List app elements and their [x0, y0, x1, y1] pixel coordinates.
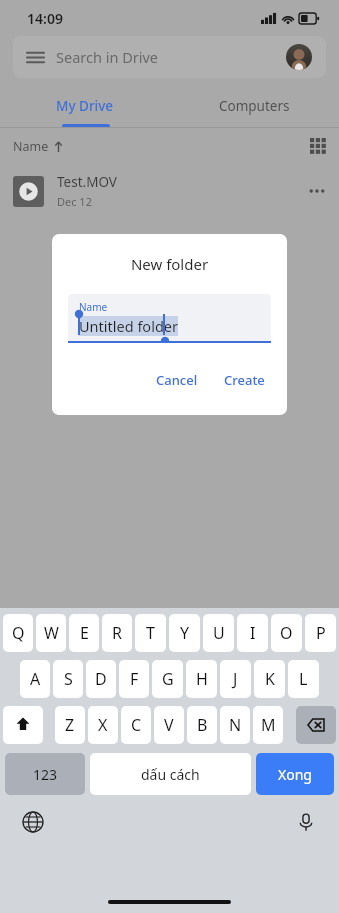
staticText: New folder	[52, 254, 287, 274]
button[interactable]: C	[121, 706, 151, 744]
staticText: T	[146, 622, 155, 644]
button[interactable]: Change keyboard	[22, 811, 44, 833]
button[interactable]: B	[187, 706, 217, 744]
button[interactable]: Grid view	[310, 138, 326, 154]
button[interactable]: More options	[308, 182, 326, 200]
button[interactable]: Q	[3, 614, 33, 652]
staticText: Create	[224, 371, 265, 389]
staticText: D	[95, 668, 107, 690]
button[interactable]: Computers	[169, 88, 339, 124]
button[interactable]: M	[253, 706, 283, 744]
staticText: A	[30, 668, 41, 690]
staticText: Xong	[278, 765, 312, 784]
staticText: I	[250, 622, 256, 644]
button[interactable]: K	[254, 660, 285, 698]
staticText: Name	[13, 138, 49, 155]
button[interactable]: O	[271, 614, 302, 652]
button[interactable]: Cancel	[147, 365, 207, 395]
staticText: X	[98, 714, 108, 736]
button[interactable]: dấu cách	[90, 753, 251, 795]
button[interactable]: S	[53, 660, 83, 698]
staticText: B	[197, 714, 208, 736]
button[interactable]: Backspace	[296, 706, 336, 744]
button[interactable]: W	[36, 614, 66, 652]
staticText: U	[213, 622, 225, 644]
button[interactable]: E	[69, 614, 99, 652]
staticText: S	[64, 668, 73, 690]
staticText: Dec 12	[57, 194, 92, 209]
staticText: Name	[79, 300, 108, 314]
button[interactable]: H	[186, 660, 217, 698]
button[interactable]: D	[86, 660, 116, 698]
button[interactable]: N	[220, 706, 250, 744]
button[interactable]: Menu	[13, 36, 326, 78]
button[interactable]: U	[203, 614, 234, 652]
staticText: Computers	[219, 97, 290, 115]
button[interactable]: L	[288, 660, 319, 698]
button[interactable]: I	[237, 614, 268, 652]
button[interactable]: V	[154, 706, 184, 744]
staticText: dấu cách	[141, 765, 200, 784]
staticText: H	[196, 668, 208, 690]
staticText: 123	[33, 765, 58, 784]
button[interactable]: Voice input	[295, 811, 317, 833]
staticText: My Drive	[56, 97, 114, 115]
staticText: Cancel	[156, 371, 198, 389]
button[interactable]: Name	[13, 138, 64, 155]
staticText: L	[299, 668, 308, 690]
button[interactable]: F	[119, 660, 149, 698]
staticText: G	[162, 668, 174, 690]
staticText: E	[80, 622, 89, 644]
staticText: N	[229, 714, 242, 736]
staticText: Y	[180, 622, 190, 644]
staticText: V	[164, 714, 174, 736]
button[interactable]: Create	[215, 365, 274, 395]
button[interactable]: Account	[286, 44, 312, 70]
staticText: C	[131, 714, 142, 736]
other: Menu	[27, 49, 44, 66]
staticText: M	[261, 714, 276, 736]
staticText: K	[265, 668, 275, 690]
button[interactable]: J	[220, 660, 251, 698]
button[interactable]: G	[152, 660, 183, 698]
button[interactable]: Test.MOV	[13, 164, 326, 218]
button[interactable]: R	[102, 614, 132, 652]
button[interactable]: Name	[68, 294, 271, 341]
staticText: Search in Drive	[56, 47, 158, 67]
staticText: F	[130, 668, 139, 690]
button[interactable]: A	[20, 660, 50, 698]
staticText: Q	[12, 622, 25, 644]
staticText: Z	[65, 714, 75, 736]
button[interactable]: P	[305, 614, 336, 652]
staticText: Test.MOV	[57, 173, 117, 191]
button[interactable]: T	[135, 614, 166, 652]
staticText: O	[280, 622, 293, 644]
staticText: 14:09	[27, 9, 63, 28]
button[interactable]: Z	[55, 706, 85, 744]
staticText: Untitled folder	[79, 316, 178, 336]
staticText: W	[44, 622, 59, 644]
button[interactable]: Y	[169, 614, 200, 652]
button[interactable]: 123	[5, 753, 85, 795]
button[interactable]: My Drive	[0, 88, 169, 124]
staticText: R	[112, 622, 122, 644]
button[interactable]: Xong	[256, 753, 334, 795]
button[interactable]: X	[88, 706, 118, 744]
staticText: J	[233, 668, 238, 690]
button[interactable]: Shift	[3, 706, 43, 744]
staticText: P	[316, 622, 326, 644]
